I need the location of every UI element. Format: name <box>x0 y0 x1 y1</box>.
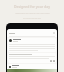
button[interactable]: Like <box>8 53 56 63</box>
staticText: for work and for life <box>23 17 41 20</box>
button[interactable]: Like <box>50 60 52 62</box>
button[interactable] <box>7 64 57 72</box>
staticText: Designed for your day <box>14 4 50 9</box>
staticText: everything you need in one calm place <box>15 12 50 15</box>
button[interactable] <box>8 38 56 52</box>
button[interactable]: Share <box>53 60 55 62</box>
